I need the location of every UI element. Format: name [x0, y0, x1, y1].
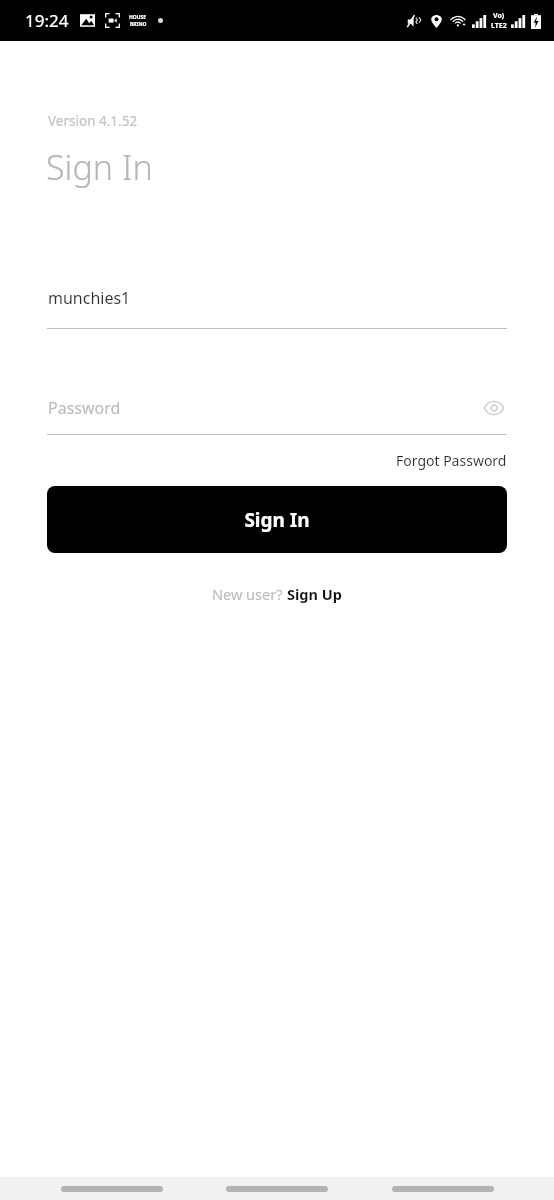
staticText: BRINO — [130, 21, 147, 28]
staticText: Version 4.1.52 — [48, 112, 138, 130]
button[interactable]: Sign In — [47, 486, 507, 553]
button[interactable]: Navigation button — [389, 1179, 497, 1199]
staticText: 19:24 — [25, 9, 69, 32]
button[interactable]: Show password — [481, 395, 507, 421]
button[interactable]: Password — [47, 395, 507, 435]
button[interactable]: Navigation button — [58, 1179, 166, 1199]
staticText: HOUSE — [129, 14, 147, 21]
staticText: Password — [48, 397, 481, 419]
button[interactable]: munchies1 — [47, 287, 507, 329]
staticText: LTE2 — [491, 21, 507, 31]
staticText: munchies1 — [48, 287, 131, 309]
button[interactable]: Navigation button — [223, 1179, 331, 1199]
staticText: Forgot Password — [396, 451, 507, 470]
staticText: Sign In — [244, 507, 310, 533]
button[interactable]: Forgot Password — [396, 451, 507, 470]
staticText: Sign Up — [287, 584, 342, 604]
staticText: Sign In — [46, 144, 153, 190]
button[interactable]: New user? — [212, 584, 342, 604]
staticText: New user? — [212, 584, 287, 604]
staticText: Vo) — [493, 11, 505, 21]
